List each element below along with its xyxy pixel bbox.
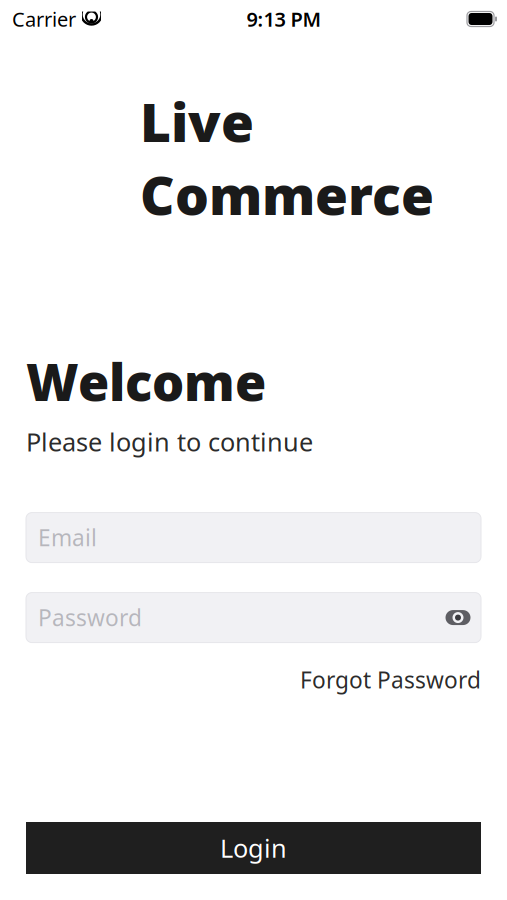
staticText: Carrier <box>12 6 76 32</box>
staticText: Please login to continue <box>26 425 313 458</box>
button[interactable]: Login <box>26 822 481 874</box>
staticText: Email <box>38 522 97 553</box>
staticText: Password <box>38 602 142 633</box>
staticText: 9:13 PM <box>246 6 321 32</box>
staticText: Live <box>140 86 254 157</box>
staticText: Forgot Password <box>300 665 481 695</box>
staticText: Welcome <box>26 348 266 415</box>
button[interactable]: Forgot Password <box>300 661 481 699</box>
staticText: Login <box>220 831 287 865</box>
button[interactable]: Show password <box>441 601 475 635</box>
staticText: Commerce <box>140 159 434 230</box>
